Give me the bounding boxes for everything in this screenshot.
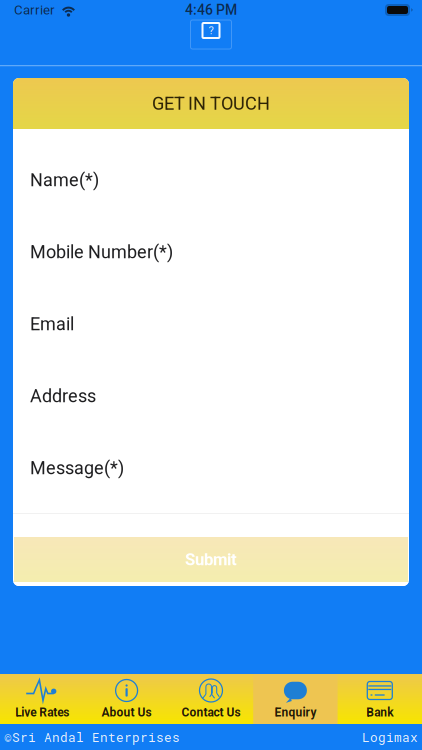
staticText: Name(*) [30, 169, 99, 191]
button[interactable]: Name(*) [13, 144, 409, 216]
staticText: Email [30, 313, 74, 335]
staticText: Carrier [14, 2, 55, 18]
button[interactable]: Bank [338, 674, 422, 724]
button[interactable]: About Us [84, 674, 169, 724]
staticText: Address [30, 385, 96, 407]
staticText: Submit [185, 550, 237, 569]
staticText: GET IN TOUCH [152, 93, 270, 114]
staticText: ©Sri Andal Enterprises [4, 729, 180, 745]
staticText: Bank [366, 705, 393, 720]
button[interactable]: Submit [14, 537, 408, 582]
button[interactable]: Mobile Number(*) [13, 216, 409, 288]
button[interactable]: Contact Us [169, 674, 253, 724]
button[interactable]: Address [13, 360, 409, 432]
staticText: Enquiry [274, 705, 316, 720]
button[interactable]: Enquiry [253, 674, 338, 724]
staticText: About Us [102, 705, 152, 720]
button[interactable]: Email [13, 288, 409, 360]
button[interactable]: Live Rates [0, 674, 84, 724]
button[interactable]: Message(*) [13, 432, 409, 504]
staticText: Message(*) [30, 457, 124, 479]
staticText: ? [208, 24, 213, 37]
staticText: Mobile Number(*) [30, 241, 173, 263]
staticText: Live Rates [15, 705, 69, 720]
staticText: 4:46 PM [185, 2, 237, 18]
staticText: Contact Us [181, 705, 240, 720]
staticText: Logimax [362, 729, 418, 745]
